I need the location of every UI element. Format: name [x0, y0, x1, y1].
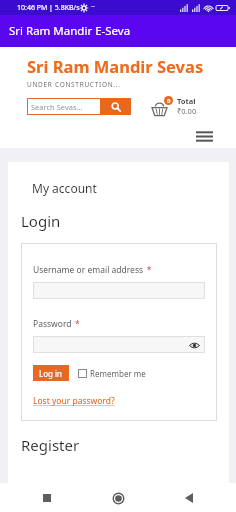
staticText: Login: [21, 211, 61, 231]
button[interactable]: Show password: [33, 336, 205, 353]
button[interactable]: Home: [105, 485, 131, 511]
button[interactable]: 0: [151, 96, 197, 116]
staticText: Username or email address *: [33, 258, 152, 277]
button[interactable]: Log in: [33, 365, 69, 381]
staticText: Sri Ram Mandir E-Seva: [9, 23, 131, 39]
button[interactable]: [33, 282, 205, 299]
staticText: UNDER CONSTRUCTION...: [27, 80, 121, 89]
staticText: Remember me: [90, 368, 146, 379]
button[interactable]: Recents: [34, 485, 60, 511]
staticText: ₹0.00: [177, 106, 197, 116]
staticText: My account: [32, 180, 97, 196]
staticText: Register: [21, 435, 80, 455]
button[interactable]: Show password: [188, 339, 200, 351]
staticText: ··: [91, 2, 95, 12]
staticText: Search Sevas...: [31, 102, 83, 112]
staticText: 0: [167, 97, 171, 105]
button[interactable]: Menu: [193, 125, 215, 147]
button[interactable]: Lost your password?: [33, 395, 115, 407]
staticText: Total: [177, 96, 196, 106]
button[interactable]: Search Sevas...: [27, 98, 131, 115]
staticText: 10:46 PM | 5.8KB/s: [17, 3, 80, 13]
staticText: Sri Ram Mandir Sevas: [27, 55, 204, 77]
staticText: Password *: [33, 312, 80, 331]
button[interactable]: Remember me: [78, 368, 146, 379]
button[interactable]: Back: [176, 485, 202, 511]
staticText: Log in: [39, 368, 63, 379]
